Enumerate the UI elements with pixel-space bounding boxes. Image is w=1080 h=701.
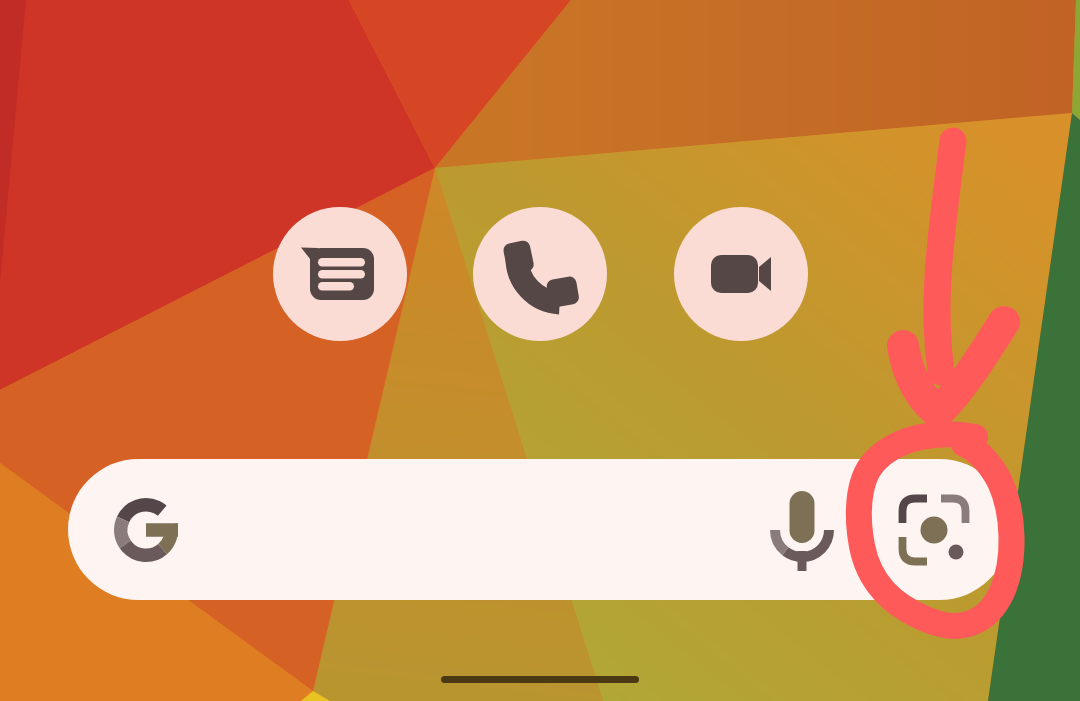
button[interactable]: Phone <box>473 207 607 341</box>
button[interactable]: Messages <box>273 207 407 341</box>
button[interactable]: Search <box>68 459 768 600</box>
button[interactable]: Voice search <box>766 465 838 595</box>
button[interactable]: Google Lens <box>880 465 1000 595</box>
button[interactable]: Video call <box>674 207 808 341</box>
